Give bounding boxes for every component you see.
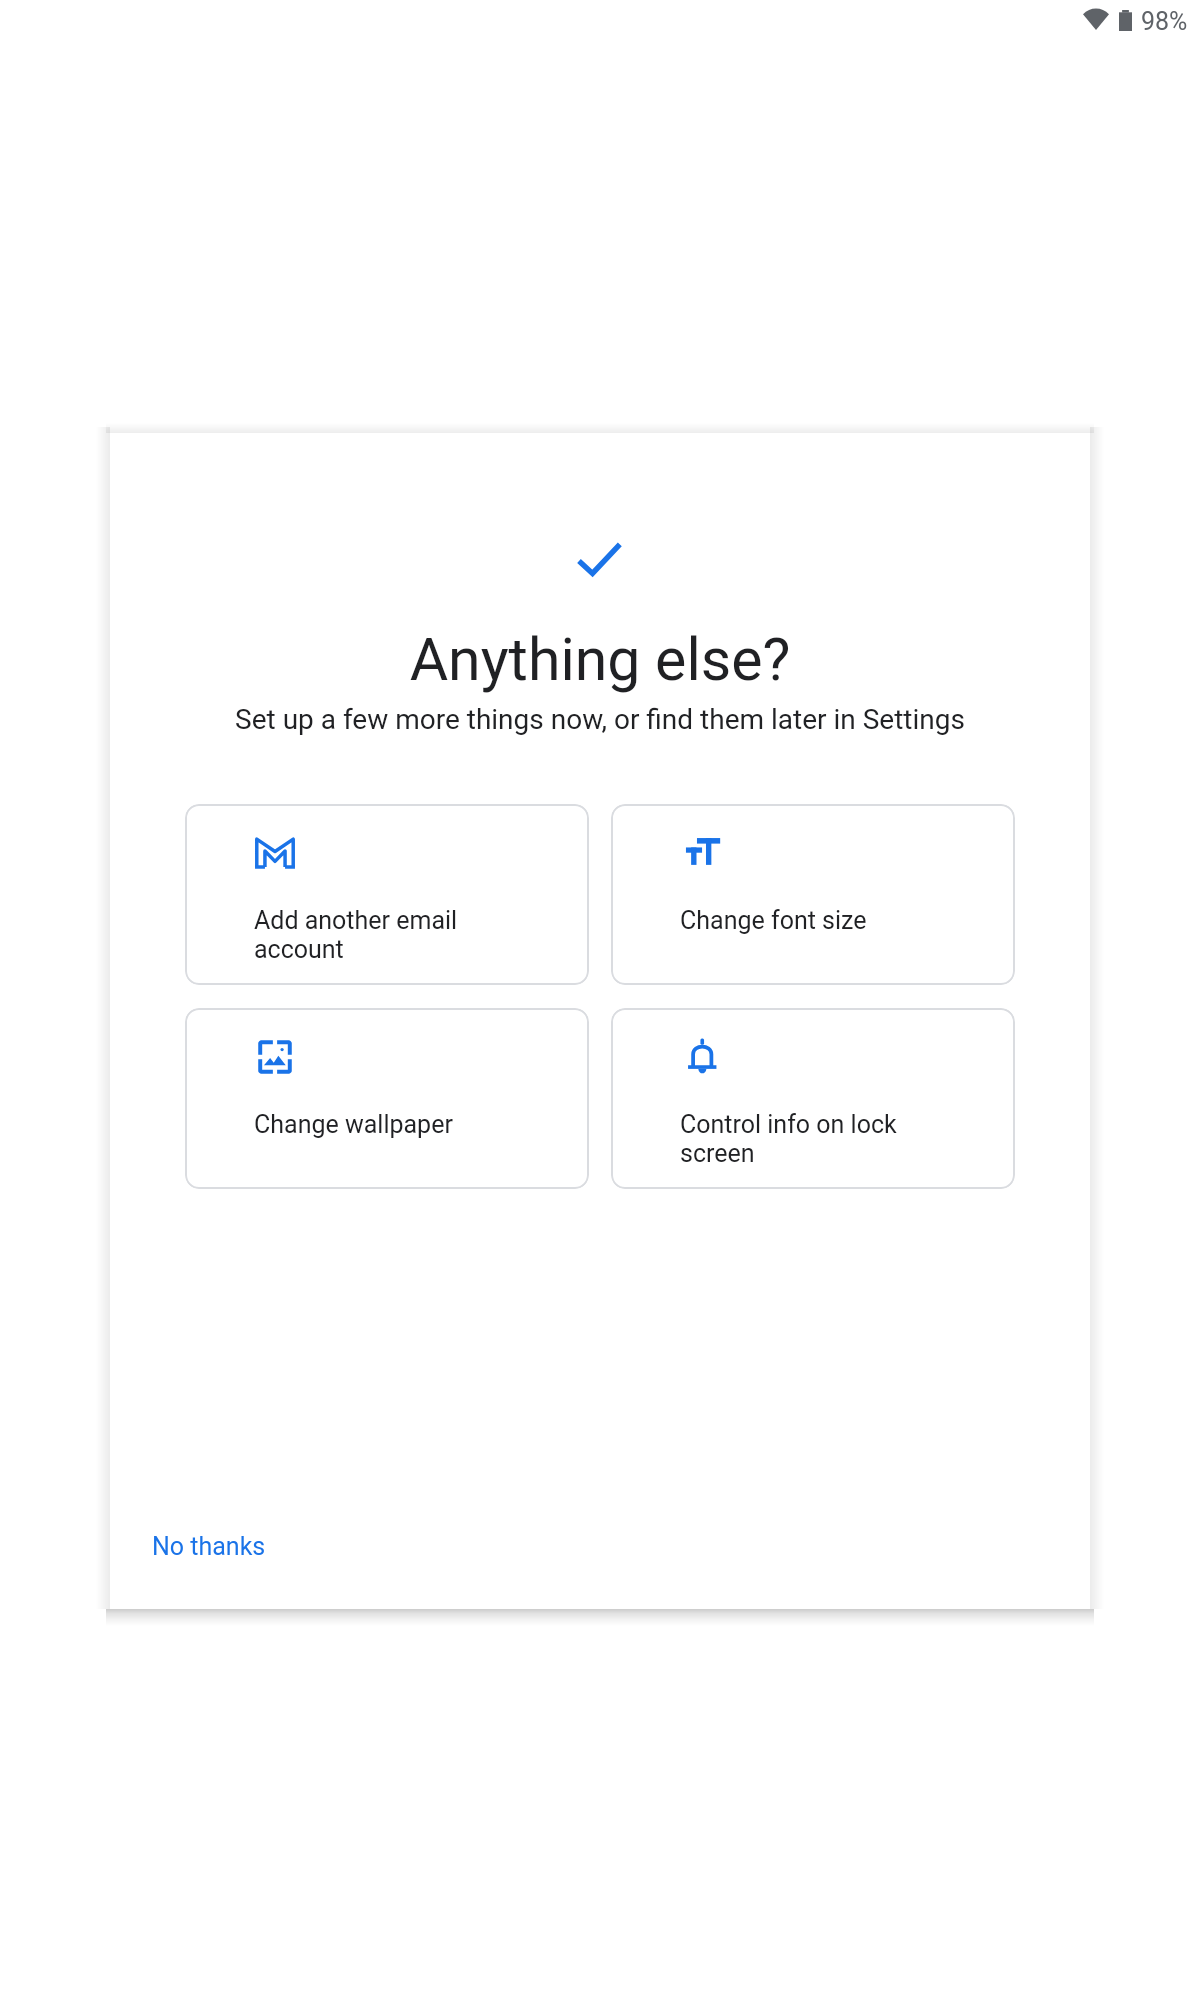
staticText: 98% xyxy=(1141,7,1188,36)
staticText: Change font size xyxy=(680,906,867,935)
button[interactable]: Change font size xyxy=(611,804,1015,985)
button[interactable]: Change wallpaper xyxy=(185,1008,589,1189)
staticText: Set up a few more things now, or find th… xyxy=(110,703,1090,736)
staticText: Add another email account xyxy=(254,906,458,964)
staticText: No thanks xyxy=(152,1532,266,1561)
other: Battery xyxy=(1119,10,1132,31)
button[interactable]: No thanks xyxy=(136,1522,282,1571)
staticText: Change wallpaper xyxy=(254,1110,453,1139)
button[interactable]: Add another email account xyxy=(185,804,589,985)
staticText: Control info on lock screen xyxy=(680,1110,897,1168)
staticText: Anything else? xyxy=(110,625,1090,694)
other: Wi-Fi xyxy=(1083,9,1109,30)
button[interactable]: Control info on lock screen xyxy=(611,1008,1015,1189)
